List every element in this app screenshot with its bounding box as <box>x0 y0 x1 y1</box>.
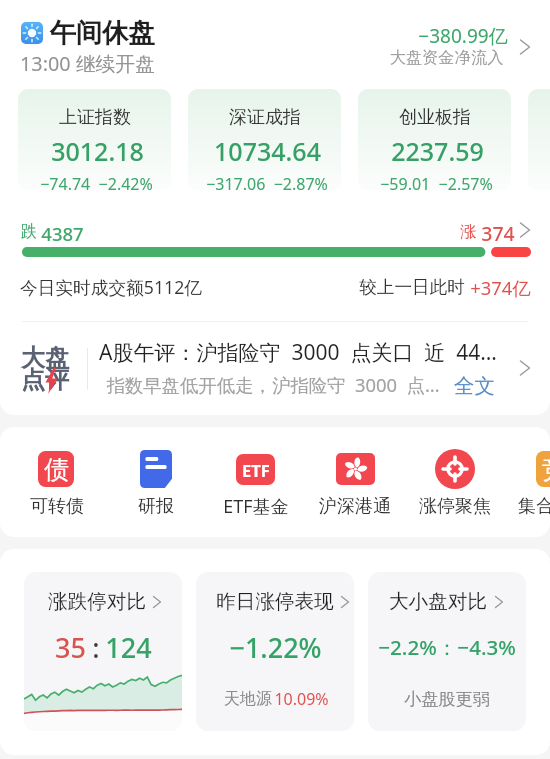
staticText: 涨 <box>460 222 476 242</box>
staticText: −380.99亿 <box>418 23 508 49</box>
staticText: −74.74 −2.42% <box>40 173 153 195</box>
staticText: 天地源 <box>224 689 272 709</box>
other: 研报 <box>140 450 172 488</box>
staticText: : <box>92 629 100 666</box>
staticText: 大小盘对比 <box>389 589 487 614</box>
button[interactable] <box>111 441 201 523</box>
staticText: ETF基金 <box>223 494 289 519</box>
staticText: −2.2%：−4.3% <box>378 633 516 661</box>
staticText: −1.22% <box>229 629 322 666</box>
staticText: 今日实时成交额5112亿 <box>20 275 202 299</box>
staticText: 上证指数 <box>59 106 131 129</box>
other: 涨停聚焦 <box>435 449 475 489</box>
staticText: 较上一日此时 <box>359 276 465 298</box>
staticText: 研报 <box>138 495 174 518</box>
staticText: 跌 <box>21 222 37 242</box>
staticText: 3012.18 <box>51 134 144 168</box>
button[interactable] <box>358 89 511 191</box>
other: ETF基金 <box>236 454 275 485</box>
staticText: 35 <box>55 629 86 666</box>
staticText: 竞 <box>542 454 550 485</box>
button[interactable] <box>410 441 500 523</box>
button[interactable] <box>211 441 301 523</box>
button[interactable] <box>24 572 182 731</box>
staticText: 债 <box>44 454 69 485</box>
staticText: 2237.59 <box>391 134 484 168</box>
other: 沪深港通 <box>336 453 375 485</box>
staticText: +374亿 <box>470 275 531 300</box>
staticText: 全文 <box>454 373 495 399</box>
staticText: 13:00 继续开盘 <box>20 50 155 77</box>
staticText: 10734.64 <box>214 134 321 168</box>
staticText: 昨日涨停表现 <box>216 589 334 614</box>
button[interactable] <box>196 572 354 731</box>
staticText: −317.06 −2.87% <box>206 173 328 195</box>
staticText: 沪深港通 <box>319 495 391 518</box>
staticText: 124 <box>105 629 152 666</box>
button[interactable]: −380.99亿 <box>350 25 508 47</box>
staticText: 大盘资金净流入 <box>389 47 504 68</box>
button[interactable] <box>188 89 341 191</box>
button[interactable] <box>368 572 526 731</box>
button[interactable] <box>0 330 550 415</box>
staticText: 4387 <box>41 221 84 246</box>
staticText: 点评 <box>21 365 69 395</box>
staticText: ETF <box>242 459 270 481</box>
button[interactable] <box>528 89 550 191</box>
other: 集合竞价 <box>536 451 550 487</box>
button[interactable] <box>12 441 102 523</box>
button[interactable] <box>509 441 550 523</box>
staticText: 374 <box>481 220 515 247</box>
staticText: 创业板指 <box>399 106 471 129</box>
staticText: 可转债 <box>30 495 84 518</box>
staticText: 涨停聚焦 <box>419 495 491 518</box>
button[interactable] <box>18 89 171 191</box>
staticText: 集合竞价 <box>518 495 550 518</box>
button[interactable] <box>310 441 400 523</box>
staticText: 大盘 <box>21 343 69 373</box>
staticText: −59.01 −2.57% <box>380 173 493 195</box>
staticText: 深证成指 <box>229 106 301 129</box>
staticText: A股午评：沪指险守 3000 点关口 近 44… <box>99 338 497 367</box>
staticText: 10.09% <box>274 688 329 710</box>
staticText: 小盘股更弱 <box>404 688 490 710</box>
other: 可转债 <box>38 451 74 487</box>
staticText: 涨跌停对比 <box>48 589 146 614</box>
staticText: 指数早盘低开低走，沪指险守 3000 点… <box>106 372 440 397</box>
staticText: 午间休盘 <box>49 17 155 50</box>
